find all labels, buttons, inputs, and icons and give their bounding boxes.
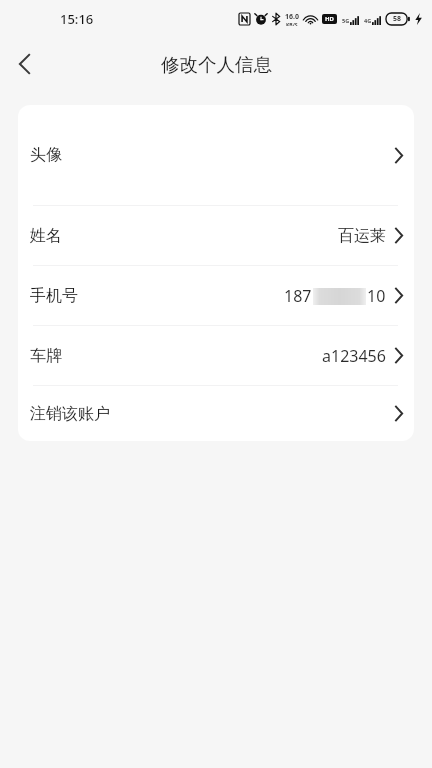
button[interactable]: 车牌: [18, 326, 414, 385]
staticText: 58: [393, 14, 402, 24]
staticText: 车牌: [30, 346, 62, 366]
staticText: KB/S: [286, 22, 298, 26]
staticText: 187: [284, 285, 312, 307]
button[interactable]: 姓名: [18, 206, 414, 265]
staticText: 16.0: [285, 12, 299, 22]
staticText: 4G: [364, 17, 372, 24]
staticText: 注销该账户: [30, 404, 110, 424]
staticText: 手机号: [30, 286, 78, 306]
staticText: a123456: [322, 345, 386, 367]
staticText: 修改个人信息: [161, 53, 272, 76]
staticText: 5G: [342, 17, 350, 24]
staticText: HD: [325, 15, 334, 23]
button[interactable]: 手机号: [18, 266, 414, 325]
button[interactable]: Back: [0, 40, 48, 88]
staticText: 15:16: [60, 10, 94, 28]
staticText: 姓名: [30, 226, 62, 246]
button[interactable]: 注销该账户: [18, 386, 414, 441]
staticText: 头像: [30, 145, 62, 165]
button[interactable]: 头像: [18, 105, 414, 205]
staticText: 10: [367, 285, 386, 307]
staticText: 百运莱: [338, 226, 386, 246]
